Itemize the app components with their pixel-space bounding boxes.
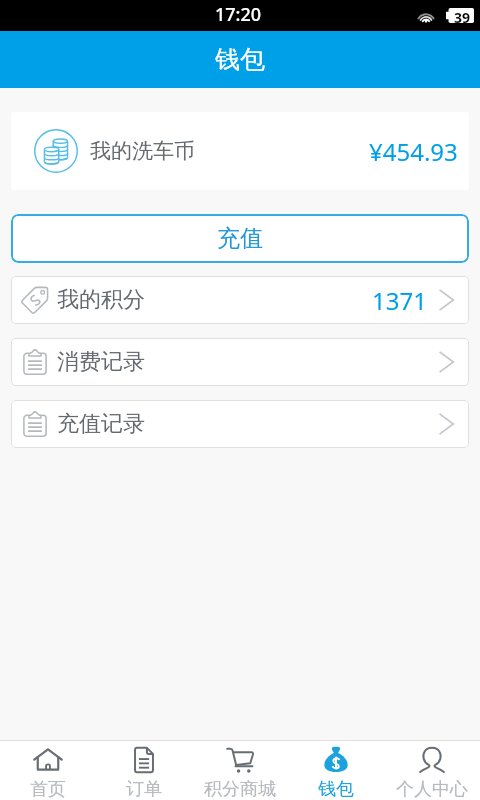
staticText: 17:20: [215, 2, 262, 27]
staticText: 积分商城: [204, 778, 276, 800]
staticText: 1371: [372, 284, 427, 317]
staticText: 首页: [30, 778, 66, 800]
button[interactable]: 我的洗车币: [11, 112, 469, 190]
staticText: 我的积分: [57, 286, 145, 314]
button[interactable]: 积分商城: [192, 741, 288, 800]
button[interactable]: 充值记录: [11, 400, 469, 448]
staticText: 钱包: [215, 44, 265, 75]
button[interactable]: 充值: [11, 214, 469, 263]
staticText: 充值: [217, 224, 263, 253]
staticText: 充值记录: [57, 410, 145, 438]
button[interactable]: 订单: [96, 741, 192, 800]
staticText: 个人中心: [396, 778, 468, 800]
button[interactable]: 钱包: [288, 741, 384, 800]
button[interactable]: 首页: [0, 741, 96, 800]
staticText: 钱包: [318, 778, 354, 800]
button[interactable]: 我的积分: [11, 276, 469, 324]
staticText: 消费记录: [57, 348, 145, 376]
staticText: 订单: [126, 778, 162, 800]
staticText: 39: [454, 8, 471, 23]
staticText: ¥454.93: [369, 135, 458, 168]
staticText: 我的洗车币: [90, 138, 195, 164]
button[interactable]: 消费记录: [11, 338, 469, 386]
button[interactable]: 个人中心: [384, 741, 480, 800]
